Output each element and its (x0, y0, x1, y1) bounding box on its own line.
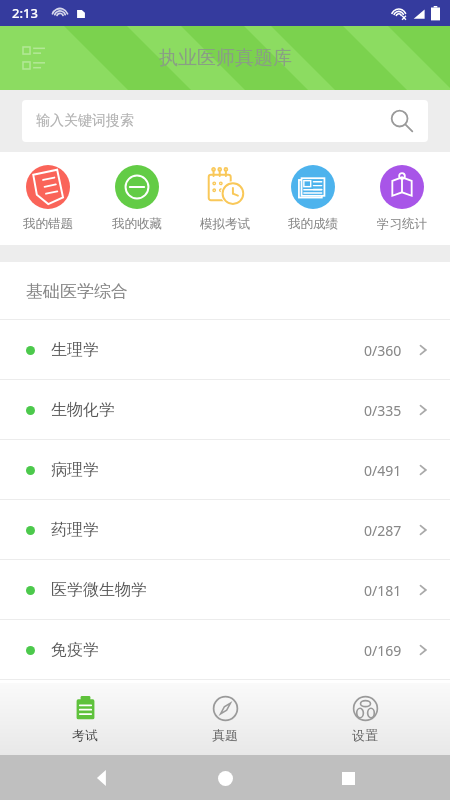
staticText: 生物化学 (51, 400, 115, 420)
button[interactable]: 免疫学 (0, 620, 450, 680)
staticText: 模拟考试 (200, 216, 250, 232)
button[interactable]: Home (205, 758, 245, 798)
staticText: 我的成绩 (288, 216, 338, 232)
staticText: 0/360 (364, 341, 402, 360)
staticText: 设置 (352, 727, 378, 743)
staticText: 0/335 (364, 401, 402, 420)
staticText: 学习统计 (377, 216, 427, 232)
staticText: 输入关键词搜索 (36, 112, 390, 130)
staticText: 医学微生物学 (51, 580, 147, 600)
staticText: 免疫学 (51, 640, 99, 660)
button[interactable]: 医学微生物学 (0, 560, 450, 620)
button[interactable]: 病理学 (0, 440, 450, 500)
button[interactable]: 我的错题 (8, 161, 88, 236)
staticText: 生理学 (51, 340, 99, 360)
button[interactable]: 生物化学 (0, 380, 450, 440)
staticText: 考试 (72, 727, 98, 743)
button[interactable]: Back (83, 758, 123, 798)
button[interactable]: 我的收藏 (97, 161, 177, 236)
staticText: 0/491 (364, 461, 402, 480)
staticText: 基础医学综合 (26, 281, 128, 302)
button[interactable]: 真题 (170, 689, 280, 749)
staticText: 我的收藏 (112, 216, 162, 232)
staticText: 病理学 (51, 460, 99, 480)
button[interactable]: 学习统计 (362, 161, 442, 236)
staticText: 2:13 (12, 4, 38, 22)
staticText: 0/169 (364, 641, 402, 660)
button[interactable]: Recents (328, 758, 368, 798)
button[interactable]: 设置 (310, 689, 420, 749)
button[interactable]: 考试 (30, 689, 140, 749)
button[interactable]: Menu (12, 36, 56, 80)
staticText: 执业医师真题库 (159, 46, 292, 70)
staticText: 真题 (212, 727, 238, 743)
staticText: 0/181 (364, 581, 402, 600)
staticText: 0/287 (364, 521, 402, 540)
staticText: 我的错题 (23, 216, 73, 232)
button[interactable]: 药理学 (0, 500, 450, 560)
button[interactable]: 生理学 (0, 320, 450, 380)
button[interactable]: 输入关键词搜索 (22, 100, 428, 142)
button[interactable]: 模拟考试 (185, 161, 265, 236)
staticText: 药理学 (51, 520, 99, 540)
button[interactable]: 我的成绩 (273, 161, 353, 236)
